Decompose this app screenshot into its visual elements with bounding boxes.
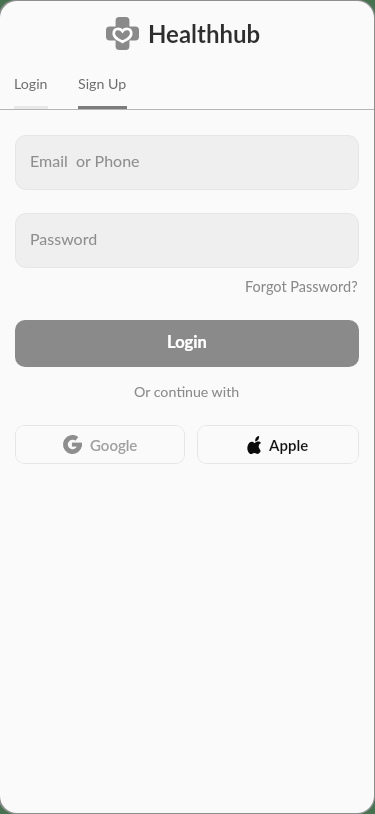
- staticText: Password: [30, 229, 98, 248]
- button[interactable]: Email or Phone: [15, 135, 359, 190]
- button[interactable]: Login: [14, 75, 48, 109]
- button[interactable]: Google: [15, 425, 185, 464]
- staticText: Sign Up: [78, 75, 127, 92]
- staticText: Or continue with: [134, 383, 240, 400]
- other: Google: [63, 435, 82, 454]
- button[interactable]: Sign Up: [78, 75, 127, 109]
- button[interactable]: Password: [15, 213, 359, 268]
- button[interactable]: Forgot Password?: [245, 278, 374, 295]
- staticText: Healthhub: [148, 19, 261, 48]
- staticText: Email or Phone: [30, 151, 140, 170]
- staticText: Login: [167, 332, 207, 352]
- staticText: Login: [14, 75, 48, 92]
- button[interactable]: Apple: [197, 425, 359, 464]
- button[interactable]: Login: [15, 320, 359, 367]
- staticText: Apple: [269, 436, 309, 454]
- other: Apple: [247, 436, 262, 454]
- staticText: Google: [90, 436, 138, 454]
